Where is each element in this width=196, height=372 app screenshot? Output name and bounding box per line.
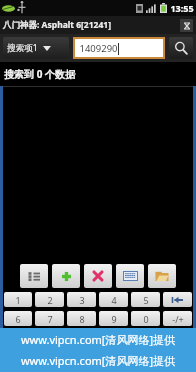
button[interactable]: 4	[99, 292, 128, 307]
staticText: 7	[47, 313, 53, 325]
staticText: 8	[79, 313, 85, 325]
button[interactable]: Progress	[180, 19, 193, 32]
button[interactable]: 5	[131, 292, 160, 307]
button[interactable]: 7	[35, 311, 64, 326]
staticText: 八门神器: Asphalt 6[21241]	[3, 19, 111, 31]
button[interactable]: Open file	[148, 264, 176, 288]
staticText: 5	[143, 294, 149, 306]
button[interactable]	[20, 264, 48, 288]
staticText: 1	[15, 294, 21, 306]
staticText: 0	[143, 313, 149, 325]
button[interactable]: Keyboard	[116, 264, 144, 288]
button[interactable]: 0	[131, 311, 160, 326]
button[interactable]: Add	[52, 264, 80, 288]
staticText: 13:55	[170, 2, 194, 14]
button[interactable]: 1409290	[75, 39, 163, 57]
staticText: www.vipcn.com[清风网络]提供	[0, 353, 196, 368]
button[interactable]: Backspace	[163, 292, 192, 307]
button[interactable]: -/+	[163, 311, 192, 326]
button[interactable]: Delete	[84, 264, 112, 288]
staticText: 2	[47, 294, 53, 306]
button[interactable]: 3	[67, 292, 96, 307]
staticText: 1409290	[79, 42, 118, 55]
staticText: www.vipcn.com[清风网络]提供	[0, 332, 196, 347]
button[interactable]: 搜索项1	[3, 37, 69, 59]
staticText: 3	[79, 294, 85, 306]
button[interactable]: 2	[35, 292, 64, 307]
staticText: 6	[15, 313, 21, 325]
button[interactable]: 9	[99, 311, 128, 326]
staticText: 搜索项1	[7, 42, 38, 54]
staticText: 9	[111, 313, 117, 325]
staticText: -/+	[172, 313, 184, 325]
button[interactable]: 6	[4, 311, 32, 326]
button[interactable]: Search	[169, 37, 193, 59]
button[interactable]: 1	[4, 292, 32, 307]
button[interactable]: 8	[67, 311, 96, 326]
staticText: 4	[111, 294, 117, 306]
staticText: 搜索到 0 个数据	[4, 67, 75, 81]
